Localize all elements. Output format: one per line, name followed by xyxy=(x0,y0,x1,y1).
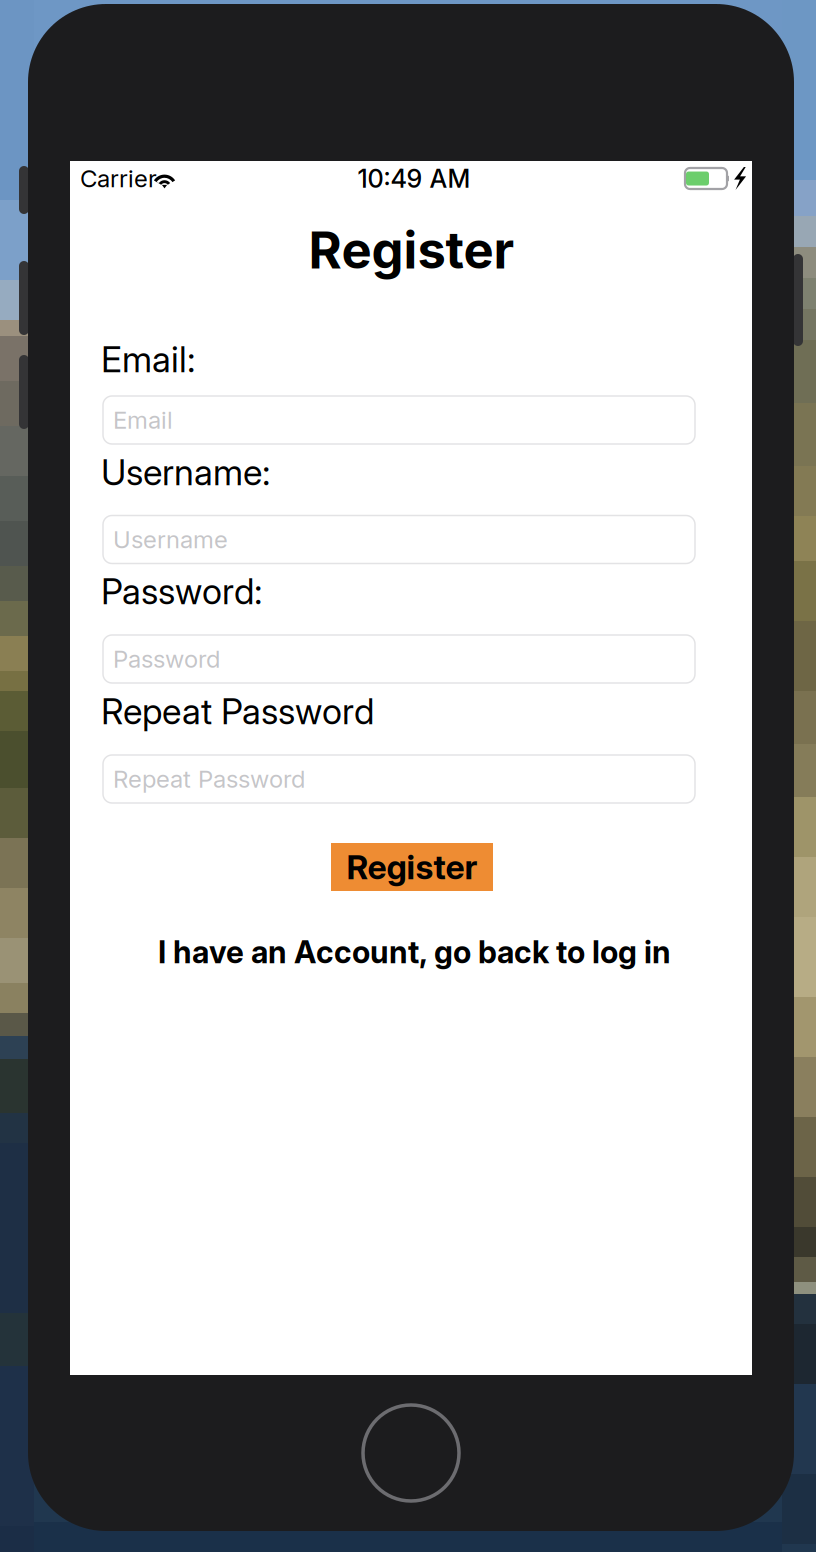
staticText: I have an Account, go back to log in xyxy=(158,933,671,970)
button[interactable]: Email xyxy=(103,396,695,444)
button[interactable]: Username xyxy=(103,515,695,563)
button[interactable]: Password xyxy=(103,635,695,683)
staticText: Repeat Password xyxy=(101,690,374,733)
staticText: Username xyxy=(113,525,228,554)
button[interactable]: Register xyxy=(331,843,493,891)
button[interactable]: Repeat Password xyxy=(103,755,695,803)
staticText: Repeat Password xyxy=(113,764,305,793)
staticText: Password xyxy=(113,644,220,673)
staticText: 10:49 AM xyxy=(357,163,470,194)
staticText: Carrier xyxy=(80,164,157,193)
staticText: Email: xyxy=(101,338,196,381)
staticText: Password: xyxy=(101,570,263,613)
staticText: Email xyxy=(113,405,173,434)
staticText: Register xyxy=(308,219,514,281)
staticText: Register xyxy=(346,847,477,887)
button[interactable]: I have an Account, go back to log in xyxy=(158,933,671,970)
staticText: Username: xyxy=(101,451,271,494)
